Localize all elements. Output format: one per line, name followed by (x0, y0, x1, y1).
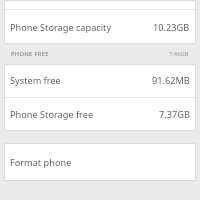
button[interactable]: System capacity (4, 0, 196, 9)
staticText: Format phone (10, 156, 72, 169)
staticText: System free (10, 74, 148, 87)
staticText: Phone Storage free (10, 108, 155, 121)
staticText: Phone Storage capacity (10, 21, 149, 34)
staticText: 91.62MB (152, 74, 190, 87)
staticText: PHONE FREE (11, 50, 49, 58)
staticText: 10.23GB (153, 21, 190, 34)
button[interactable]: Format phone (4, 143, 196, 181)
button[interactable]: Phone Storage capacity (4, 10, 196, 44)
staticText: 7.46GB (169, 50, 189, 58)
button[interactable]: Phone Storage free (4, 98, 196, 131)
button[interactable]: System free (4, 64, 196, 97)
staticText: 7.37GB (159, 108, 190, 121)
